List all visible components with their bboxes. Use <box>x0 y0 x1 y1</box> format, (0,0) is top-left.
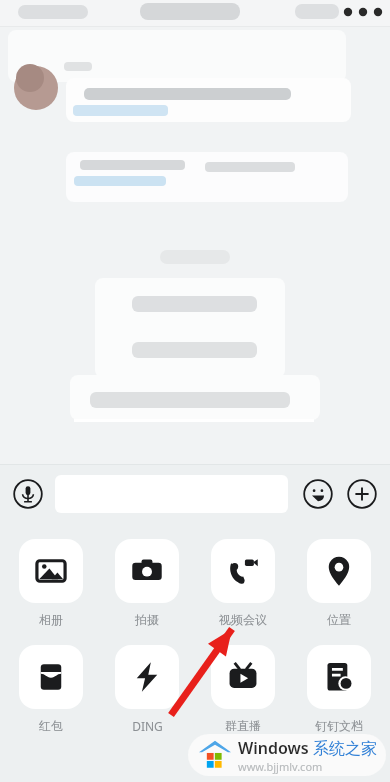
button[interactable]: 群直播 <box>206 645 280 733</box>
button[interactable]: 相册 <box>14 539 88 627</box>
staticText: Windows <box>238 737 313 759</box>
staticText: 拍摄 <box>135 612 159 627</box>
button[interactable]: More <box>344 476 380 512</box>
button[interactable]: 拍摄 <box>110 539 184 627</box>
button[interactable]: Emoji <box>300 476 336 512</box>
staticText: 系统之家 <box>313 739 377 759</box>
button[interactable]: 钉钉文档 <box>302 645 376 733</box>
button[interactable]: 红包 <box>14 645 88 733</box>
staticText: 视频会议 <box>219 612 267 627</box>
staticText: DING <box>132 718 163 734</box>
staticText: 群直播 <box>225 718 261 733</box>
staticText: 位置 <box>327 612 351 627</box>
button[interactable]: 位置 <box>302 539 376 627</box>
staticText: 红包 <box>39 718 63 733</box>
button[interactable]: 视频会议 <box>206 539 280 627</box>
staticText: www.bjjmlv.com <box>238 759 323 774</box>
button[interactable]: Voice message <box>10 476 46 512</box>
staticText: 相册 <box>39 612 63 627</box>
button[interactable]: DING <box>110 645 184 734</box>
staticText: 钉钉文档 <box>315 718 363 733</box>
